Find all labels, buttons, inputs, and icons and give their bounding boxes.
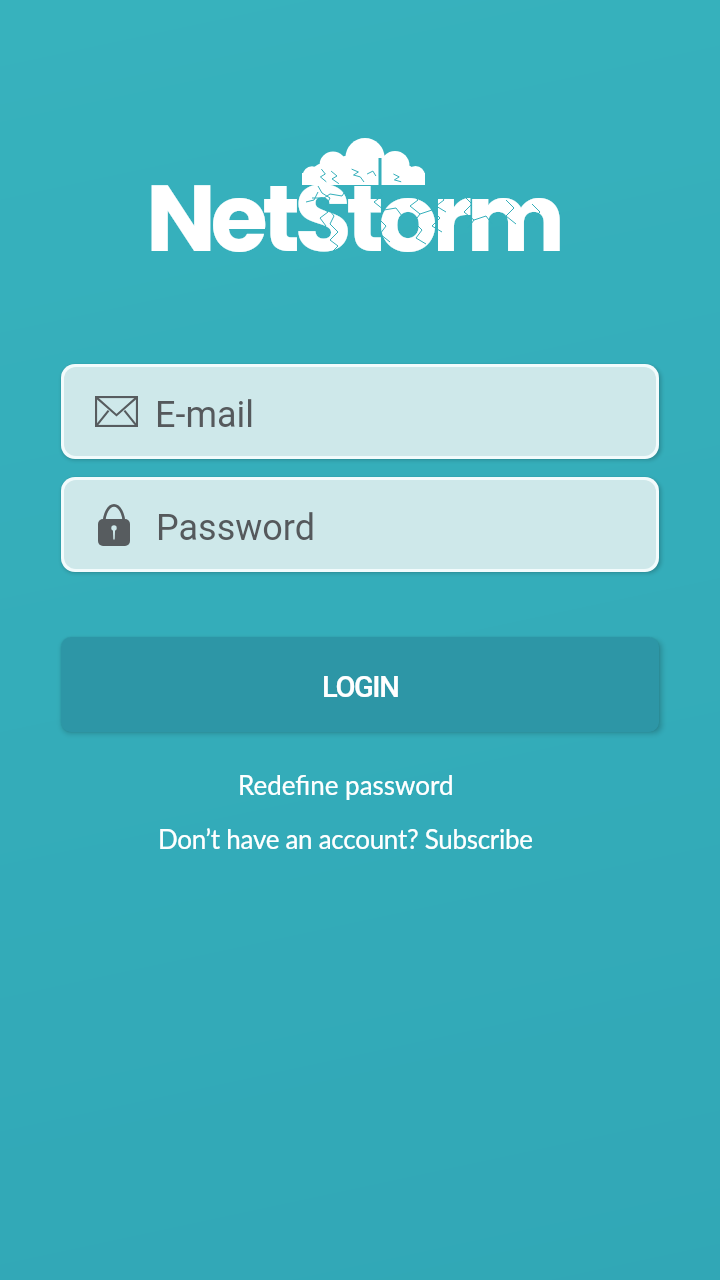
staticText: Don’t have an account? Subscribe [158, 823, 533, 854]
button[interactable]: E-mail [64, 367, 656, 456]
staticText: Redefine password [238, 769, 454, 800]
button[interactable]: Don’t have an account? Subscribe [125, 816, 565, 860]
button[interactable]: LOGIN [61, 637, 659, 732]
staticText: LOGIN [322, 670, 399, 704]
staticText: Password [156, 507, 316, 549]
button[interactable]: Redefine password [206, 762, 486, 806]
button[interactable]: Password [64, 480, 656, 569]
staticText: NetStorm [146, 153, 560, 283]
other: Password [98, 504, 130, 546]
other: E-mail [95, 396, 138, 427]
staticText: E-mail [155, 394, 255, 436]
